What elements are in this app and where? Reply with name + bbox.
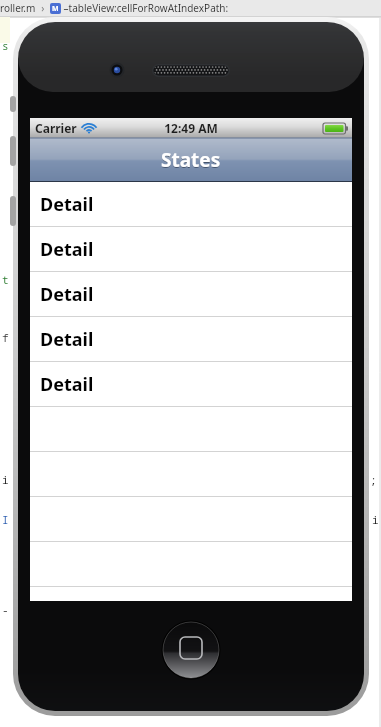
staticText: roller.m [0, 1, 36, 15]
button[interactable]: Detail [30, 362, 352, 406]
button[interactable]: Detail [30, 317, 352, 361]
staticText: –tableView:cellForRowAtIndexPath: [61, 1, 229, 15]
staticText: t [2, 272, 9, 287]
staticText: States [161, 147, 221, 173]
staticText: I [2, 512, 9, 527]
staticText: f [2, 330, 9, 345]
staticText: M [52, 4, 59, 14]
staticText: i [372, 512, 379, 527]
staticText: - [2, 602, 9, 617]
staticText: Detail [40, 282, 94, 307]
staticText: s [2, 38, 9, 53]
staticText: Detail [40, 327, 94, 352]
button[interactable]: Detail [30, 272, 352, 316]
staticText: Detail [40, 237, 94, 262]
staticText: i [2, 472, 9, 487]
staticText: Detail [40, 192, 94, 217]
staticText: States [161, 148, 221, 174]
staticText: › [36, 1, 50, 15]
staticText: 12:49 AM [164, 120, 218, 136]
button[interactable]: Detail [30, 182, 352, 226]
staticText: Carrier [35, 120, 77, 136]
button[interactable]: Detail [30, 227, 352, 271]
staticText: Detail [40, 372, 94, 397]
staticText: ; [370, 472, 377, 487]
